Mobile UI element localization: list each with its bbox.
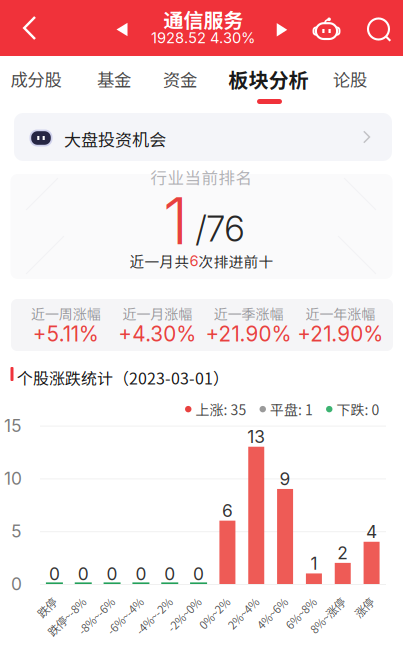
staticText: 13 xyxy=(247,426,265,447)
staticText: 板块分析 xyxy=(228,64,308,93)
staticText: -4%~-2% xyxy=(133,613,179,629)
staticText: 近一月共 xyxy=(129,250,189,272)
staticText: 行业当前排名 xyxy=(150,165,252,189)
staticText: 大盘投资机会 xyxy=(64,126,166,151)
staticText: 0 xyxy=(107,563,118,584)
staticText: 2 xyxy=(337,542,348,563)
staticText: 9 xyxy=(280,468,291,489)
staticText: +21.90% xyxy=(297,321,383,346)
button[interactable]: Search xyxy=(359,9,399,49)
staticText: 1 xyxy=(163,182,188,260)
staticText: 2%~4% xyxy=(227,613,265,629)
staticText: 通信服务 xyxy=(163,4,243,33)
button[interactable]: 大盘投资机会 xyxy=(14,113,392,161)
staticText: +21.90% xyxy=(205,321,291,346)
staticText: 下跌: 0 xyxy=(336,399,379,419)
staticText: 近一季涨幅 xyxy=(213,303,283,324)
staticText: 跌停 xyxy=(41,613,63,629)
staticText: 成分股 xyxy=(10,66,61,92)
staticText: 跌停~-8% xyxy=(44,613,92,629)
staticText: 15 xyxy=(4,415,22,436)
button[interactable]: 资金 xyxy=(157,57,203,101)
button[interactable]: Next sector xyxy=(267,15,297,45)
button[interactable]: Previous sector xyxy=(107,14,137,44)
staticText: 5 xyxy=(11,521,22,542)
staticText: 0 xyxy=(135,563,146,584)
staticText: 平盘: 1 xyxy=(270,399,313,419)
staticText: +5.11% xyxy=(33,321,99,346)
button[interactable]: Back xyxy=(6,5,52,51)
staticText: 0 xyxy=(11,573,22,594)
staticText: 0 xyxy=(49,563,60,584)
button[interactable]: 基金 xyxy=(91,57,137,101)
button[interactable]: 成分股 xyxy=(7,57,65,101)
staticText: 次排进前十 xyxy=(198,250,273,272)
staticText: 上涨: 35 xyxy=(195,399,246,419)
staticText: 1928.52 4.30% xyxy=(151,29,255,47)
staticText: 0 xyxy=(164,563,175,584)
staticText: 8%~涨停 xyxy=(308,613,352,629)
staticText: 6 xyxy=(189,252,198,270)
staticText: +4.30% xyxy=(118,321,196,346)
staticText: 个股涨跌统计（2023-03-01） xyxy=(17,366,229,389)
button[interactable]: 论股 xyxy=(327,57,373,101)
staticText: 论股 xyxy=(333,66,367,92)
staticText: /76 xyxy=(195,208,244,250)
staticText: 基金 xyxy=(97,66,131,92)
staticText: 1 xyxy=(310,553,317,574)
staticText: 6 xyxy=(222,500,233,521)
button[interactable]: AI assistant xyxy=(306,9,346,49)
staticText: 10 xyxy=(4,468,22,489)
staticText: -2%~0% xyxy=(166,613,208,629)
button[interactable]: 板块分析 xyxy=(226,57,310,101)
staticText: 4%~6% xyxy=(256,613,294,629)
staticText: 0%~2% xyxy=(198,613,236,629)
staticText: -6%~-4% xyxy=(104,613,150,629)
staticText: 近一月涨幅 xyxy=(122,303,192,324)
staticText: 近一年涨幅 xyxy=(305,303,375,324)
staticText: 近一周涨幅 xyxy=(31,303,101,324)
staticText: 涨停 xyxy=(359,613,381,629)
staticText: 资金 xyxy=(163,66,197,92)
staticText: -8%~-6% xyxy=(75,613,121,629)
staticText: 4 xyxy=(366,521,377,542)
staticText: 0 xyxy=(193,563,204,584)
staticText: 6%~8% xyxy=(285,613,323,629)
staticText: 0 xyxy=(78,563,89,584)
